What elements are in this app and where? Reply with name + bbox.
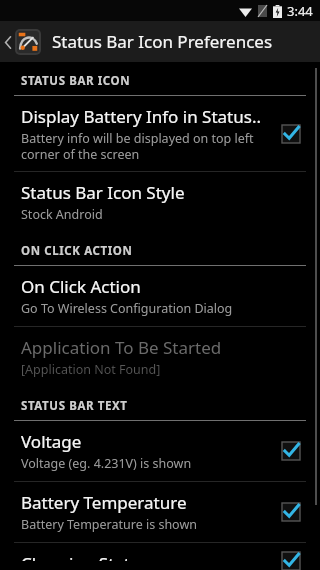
staticText: Battery info will be displayed on top le…	[21, 130, 254, 162]
staticText: Voltage (eg. 4.231V) is shown	[21, 455, 192, 472]
staticText: Go To Wireless Configuration Dialog	[21, 300, 233, 317]
staticText: STATUS BAR ICON	[21, 73, 131, 89]
staticText: STATUS BAR TEXT	[21, 398, 128, 414]
staticText: Charging Status	[21, 552, 149, 561]
staticText: Stock Android	[21, 206, 103, 223]
button[interactable]: Display Battery Info in Status..	[0, 96, 320, 171]
staticText: Status Bar Icon Preferences	[52, 30, 273, 53]
staticText: On Click Action	[21, 275, 141, 298]
staticText: Application To Be Started	[21, 336, 222, 359]
staticText: Display Battery Info in Status..	[21, 105, 262, 128]
staticText: Battery Temperature is shown	[21, 516, 197, 533]
staticText: Voltage	[21, 430, 82, 453]
button[interactable]: On Click Action	[0, 266, 320, 326]
staticText: Status Bar Icon Style	[21, 181, 185, 204]
staticText: [Application Not Found]	[21, 361, 161, 378]
button[interactable]: Battery Temperature	[0, 482, 320, 542]
button[interactable]: Charging Status	[0, 543, 320, 570]
button[interactable]: Voltage	[0, 421, 320, 481]
button[interactable]: Charging Status checkbox	[274, 552, 308, 561]
button[interactable]: Navigate up	[0, 25, 43, 59]
button[interactable]: Voltage checkbox	[274, 434, 308, 468]
button[interactable]: Status Bar Icon Style	[0, 172, 320, 232]
staticText: 3:44	[287, 2, 313, 20]
button[interactable]: Application To Be Started	[0, 327, 320, 387]
staticText: Battery Temperature	[21, 491, 187, 514]
button[interactable]: Display Battery Info in Status.. checkbo…	[274, 117, 308, 151]
button[interactable]: Battery Temperature checkbox	[274, 495, 308, 529]
staticText: ON CLICK ACTION	[21, 243, 133, 259]
